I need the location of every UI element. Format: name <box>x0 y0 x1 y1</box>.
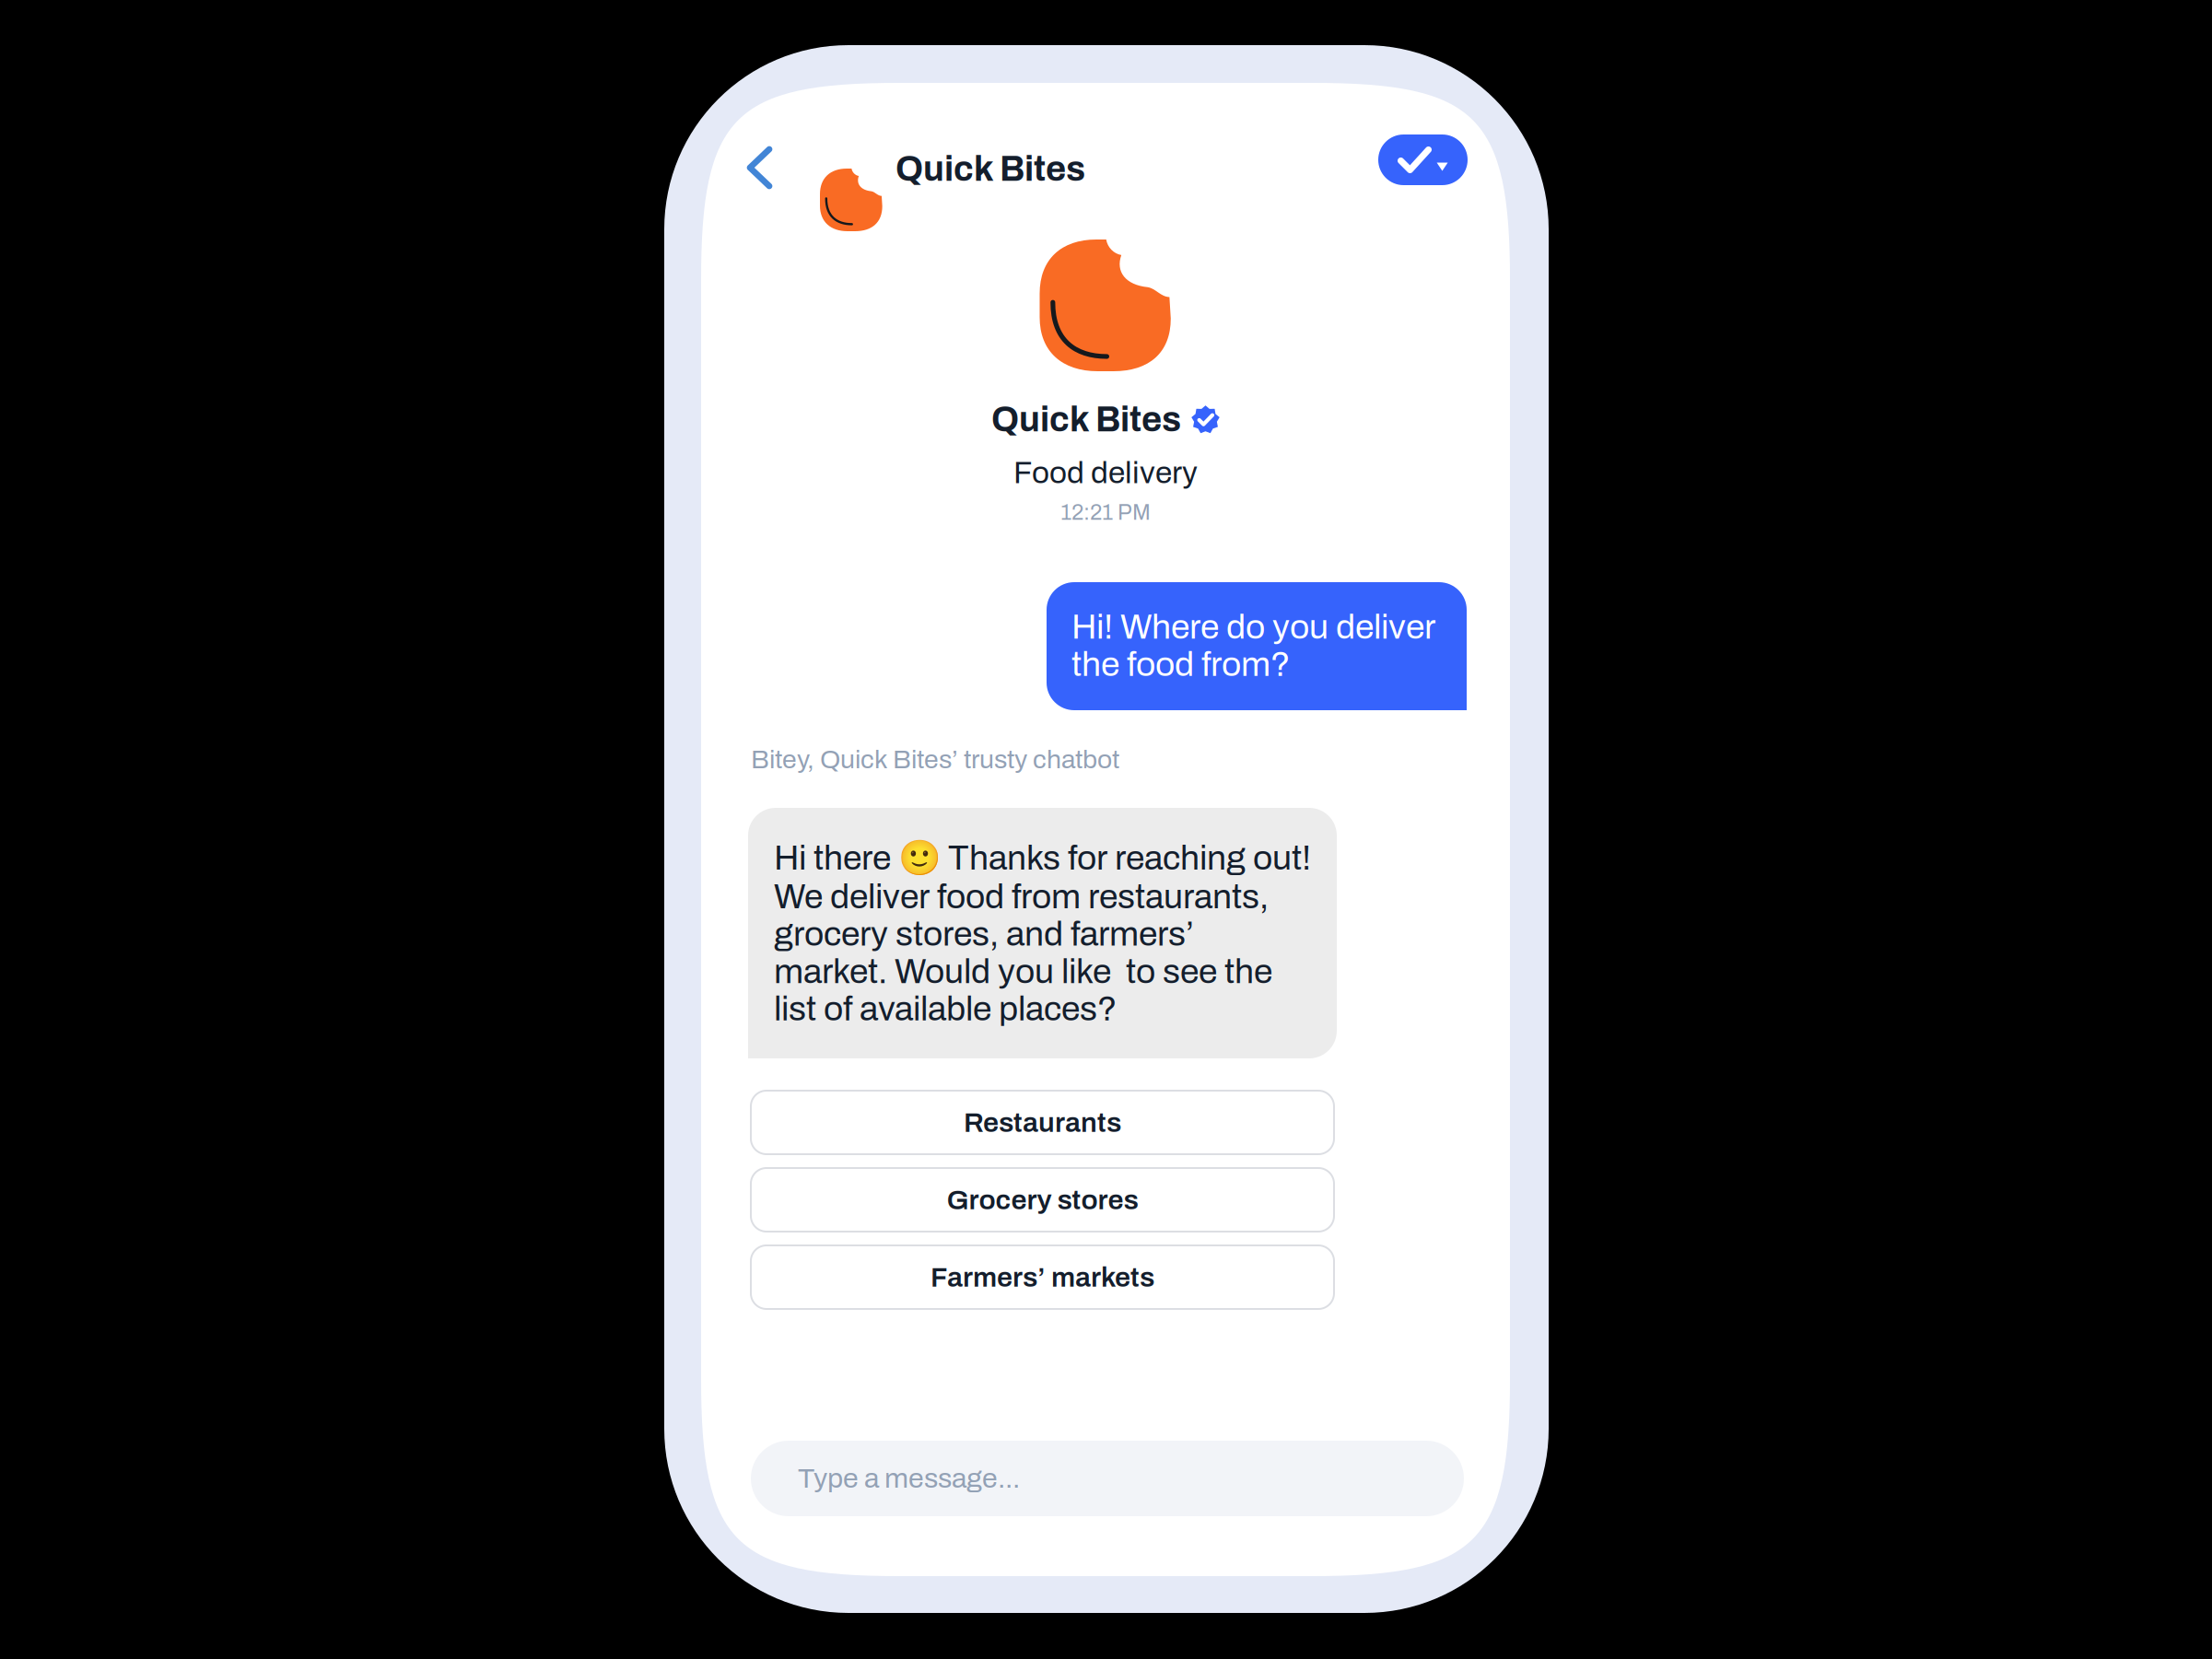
button[interactable]: Type a message... <box>751 1441 1464 1516</box>
button[interactable]: Farmers’ markets <box>751 1245 1334 1309</box>
staticText: Grocery stores <box>947 1185 1138 1215</box>
staticText: Food delivery <box>1013 456 1198 490</box>
staticText: Restaurants <box>964 1107 1121 1138</box>
button[interactable]: Back <box>737 136 782 199</box>
staticText: Bitey, Quick Bites’ trusty chatbot <box>751 745 1119 774</box>
staticText: Hi! Where do you deliver the food from? <box>1071 608 1435 683</box>
button[interactable]: Grocery stores <box>751 1168 1334 1232</box>
staticText: Farmers’ markets <box>930 1262 1154 1292</box>
button[interactable]: Restaurants <box>751 1091 1334 1154</box>
staticText: Hi there 🙂 Thanks for reaching out! We d… <box>774 838 1311 1028</box>
staticText: Quick Bites <box>991 401 1181 439</box>
staticText: Quick Bites <box>895 150 1085 188</box>
button[interactable]: Mark as read <box>1378 134 1468 185</box>
staticText: Type a message... <box>798 1463 1020 1494</box>
staticText: 12:21 PM <box>1060 501 1151 524</box>
